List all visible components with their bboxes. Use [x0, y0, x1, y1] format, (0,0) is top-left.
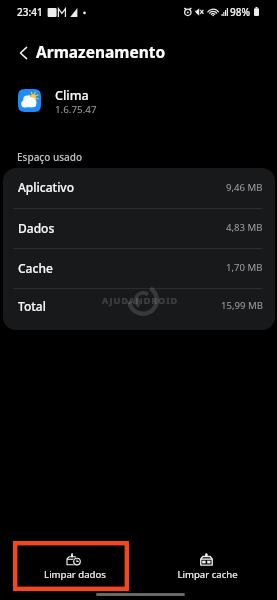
staticText: 1,70 MB [226, 261, 263, 274]
button[interactable]: Back [8, 38, 38, 68]
staticText: Cache [18, 260, 53, 276]
staticText: 9,46 MB [226, 181, 263, 194]
staticText: Espaço usado [17, 150, 83, 164]
staticText: 98% [230, 5, 250, 19]
staticText: AJUDANDROID [102, 294, 179, 306]
staticText: 23:41 [17, 5, 43, 19]
staticText: Limpar dados [44, 568, 106, 581]
staticText: Limpar cache [177, 568, 238, 581]
staticText: 4,83 MB [226, 221, 263, 234]
staticText: Dados [18, 220, 55, 236]
staticText: Aplicativo [18, 179, 75, 195]
staticText: 1.6.75.47 [55, 103, 97, 116]
button[interactable]: Dados [3, 209, 275, 249]
button[interactable]: Limpar dados [8, 553, 141, 585]
staticText: 15,99 MB [221, 299, 263, 312]
staticText: Armazenamento [36, 41, 166, 62]
button[interactable]: Aplicativo [3, 168, 275, 209]
staticText: Clima [55, 87, 89, 104]
button[interactable]: Total [3, 289, 275, 325]
button[interactable]: Limpar cache [141, 553, 274, 585]
button[interactable]: Cache [3, 249, 275, 289]
staticText: Total [18, 298, 46, 314]
